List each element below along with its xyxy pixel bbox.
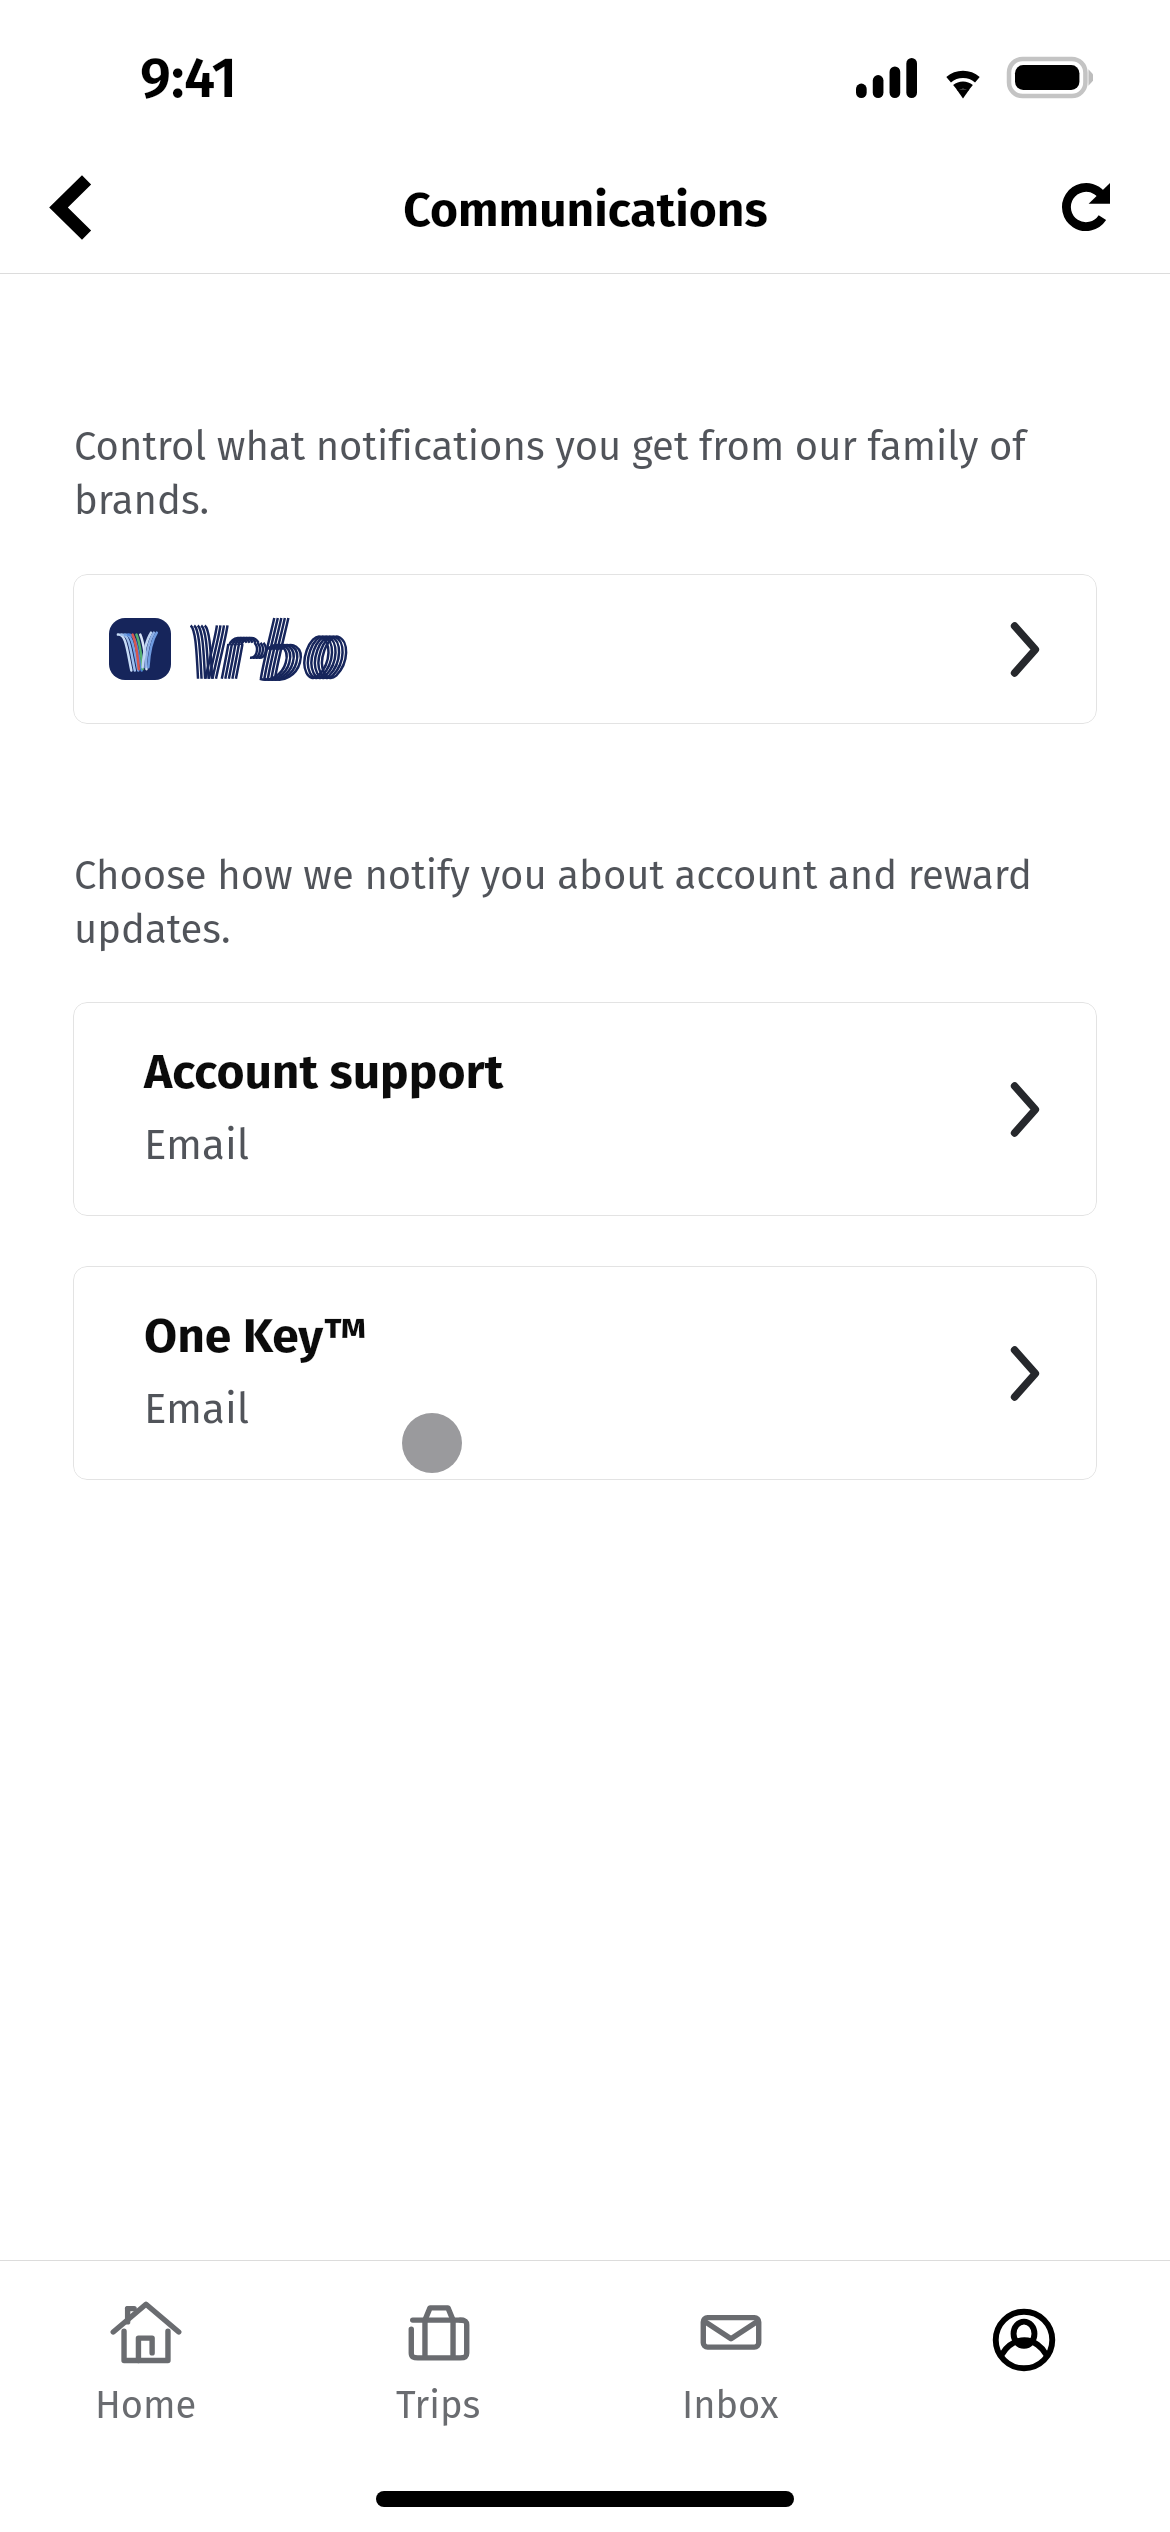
staticText: Control what notifications you get from … [74, 423, 1070, 525]
staticText: One Key™ [144, 1307, 367, 1365]
button[interactable]: Inbox [584, 2261, 877, 2447]
button[interactable]: Trips [292, 2261, 584, 2447]
staticText: Home [95, 2382, 197, 2428]
staticText: Account support [144, 1043, 504, 1101]
staticText: Email [144, 1120, 250, 1170]
staticText: 9:41 [140, 45, 237, 112]
button[interactable]: Home [0, 2261, 292, 2447]
staticText: Email [144, 1384, 250, 1434]
staticText: Inbox [682, 2382, 779, 2428]
button[interactable]: One Key™ [73, 1266, 1097, 1480]
button[interactable] [73, 574, 1097, 724]
staticText: Choose how we notify you about account a… [74, 852, 1070, 954]
button[interactable]: Back [24, 159, 120, 255]
button[interactable]: Account [877, 2261, 1170, 2447]
staticText: Communications [403, 181, 768, 239]
staticText: Trips [396, 2382, 481, 2428]
button[interactable]: Account support [73, 1002, 1097, 1216]
button[interactable]: Refresh [1038, 159, 1134, 255]
